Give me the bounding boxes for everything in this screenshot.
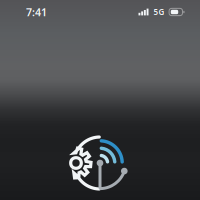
staticText: 5G — [153, 7, 164, 17]
staticText: 7:41 — [26, 5, 47, 19]
